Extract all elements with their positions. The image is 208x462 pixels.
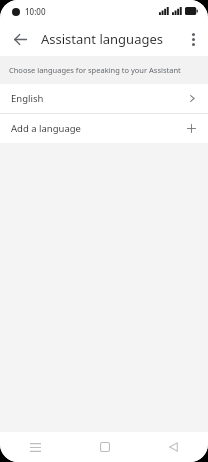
- button[interactable]: Back: [6, 25, 34, 53]
- button[interactable]: Recent apps: [0, 432, 70, 462]
- button[interactable]: Back: [139, 432, 208, 462]
- staticText: Choose languages for speaking to your As…: [9, 65, 181, 75]
- staticText: English: [11, 92, 44, 105]
- button[interactable]: Home: [70, 432, 139, 462]
- staticText: Add a language: [11, 122, 81, 135]
- button[interactable]: Open English language settings: [0, 84, 208, 113]
- button[interactable]: More options: [180, 26, 206, 52]
- staticText: Assistant languages: [41, 30, 163, 48]
- button[interactable]: Add a language: [0, 114, 208, 143]
- staticText: 10:00: [25, 6, 46, 17]
